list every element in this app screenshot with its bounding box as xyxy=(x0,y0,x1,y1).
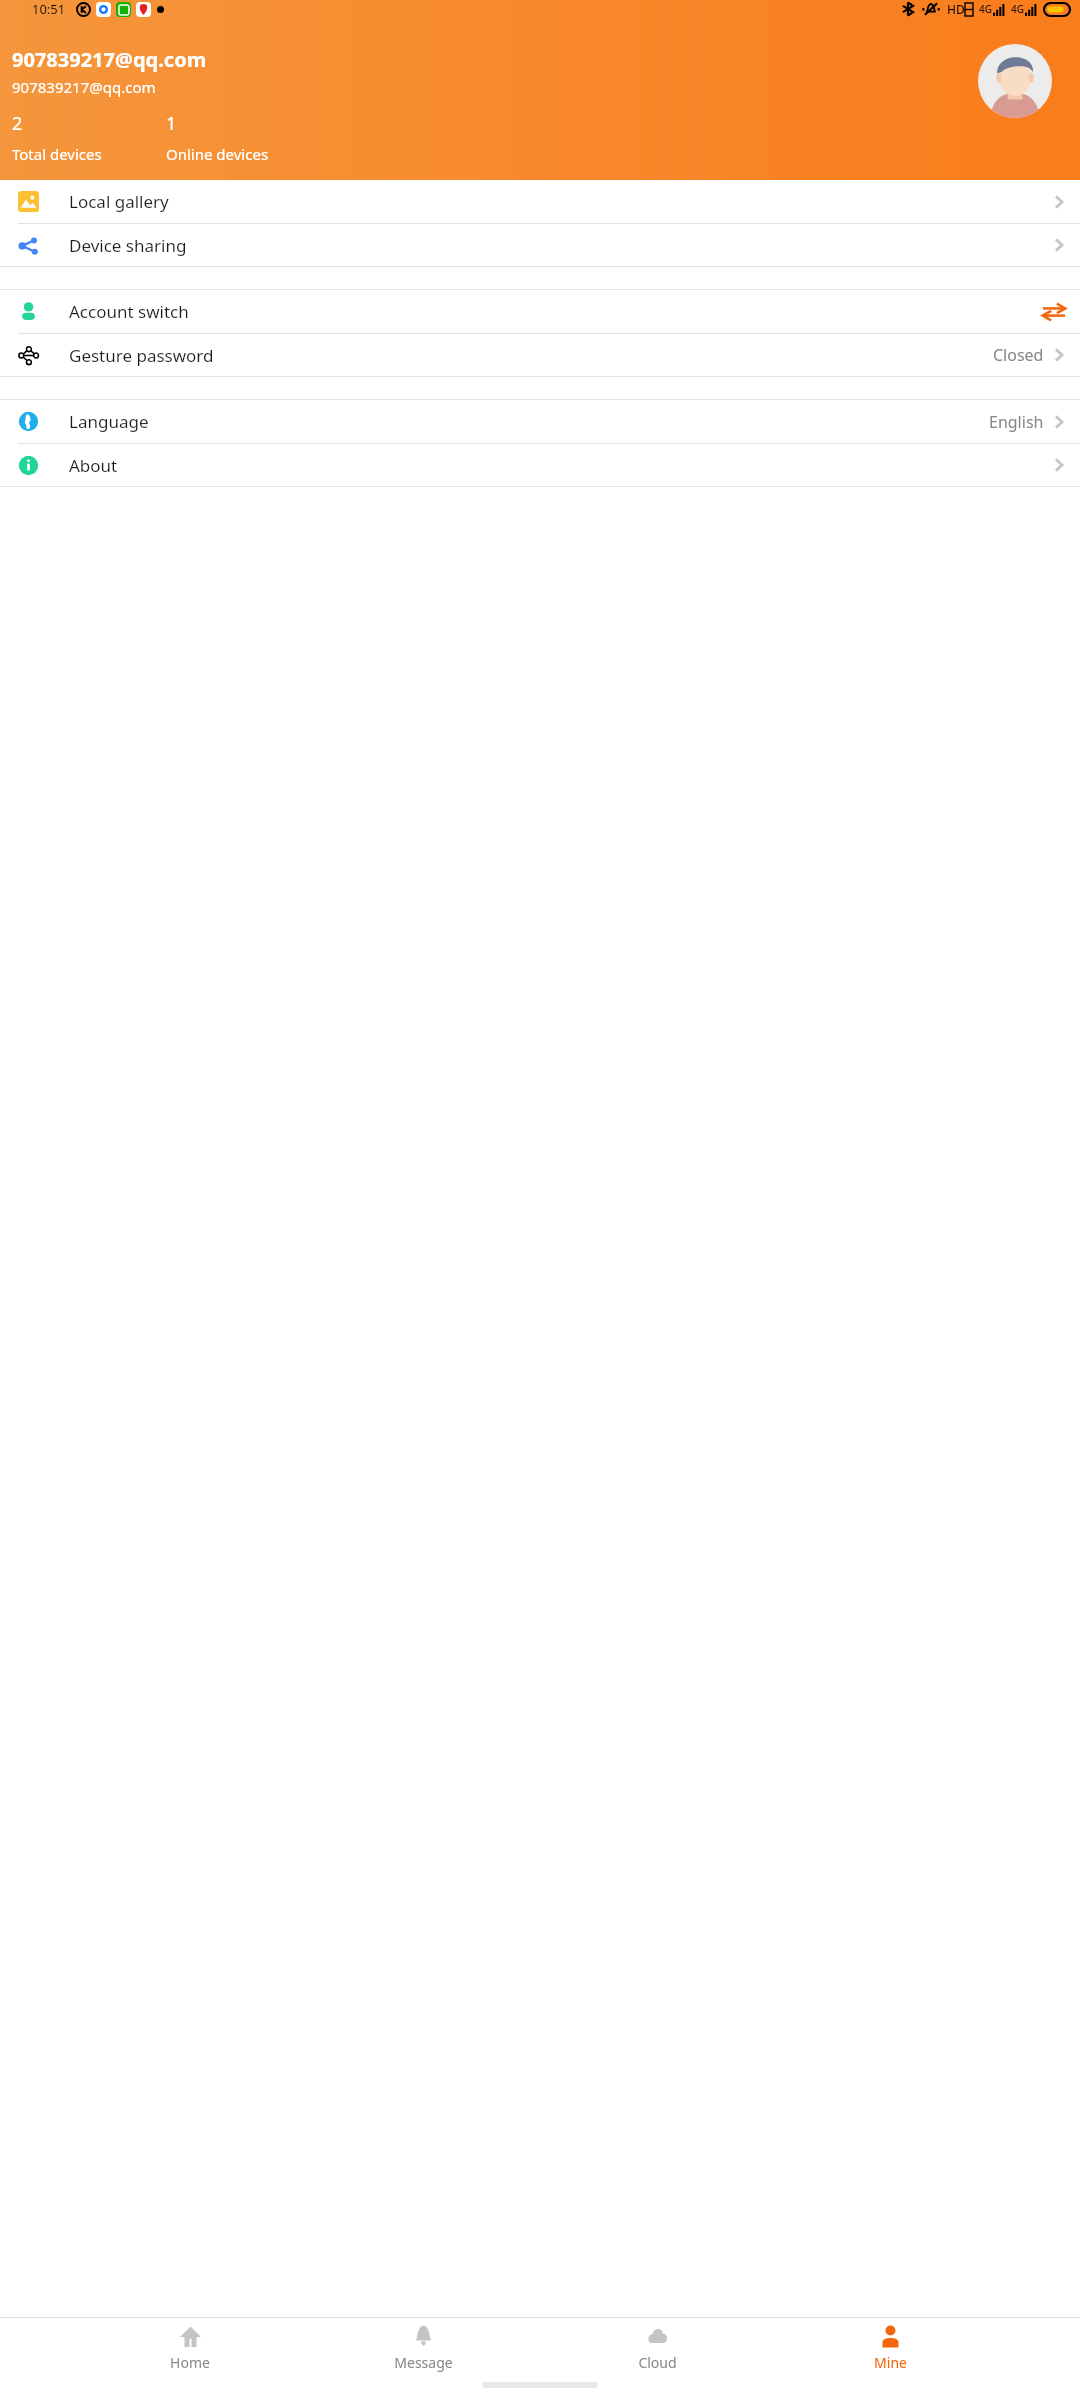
staticText: Mine xyxy=(874,2353,907,2372)
staticText: 907839217@qq.com xyxy=(12,46,207,73)
staticText: HD xyxy=(947,1,965,17)
staticText: Gesture password xyxy=(69,344,214,367)
staticText: Online devices xyxy=(166,144,269,164)
button[interactable]: Profile avatar xyxy=(978,44,1052,118)
staticText: Total devices xyxy=(12,144,102,164)
staticText: Language xyxy=(69,410,149,433)
button[interactable]: Mine xyxy=(846,2320,934,2376)
staticText: 4G xyxy=(1011,2,1024,16)
button[interactable]: Language xyxy=(0,400,1080,443)
staticText: About xyxy=(69,454,118,477)
staticText: Message xyxy=(394,2353,453,2372)
button[interactable]: About xyxy=(0,444,1080,486)
button[interactable]: Device sharing xyxy=(0,224,1080,266)
button[interactable]: Account switch xyxy=(0,290,1080,333)
button[interactable]: Local gallery xyxy=(0,180,1080,223)
button[interactable]: Gesture password xyxy=(0,334,1080,376)
staticText: Account switch xyxy=(69,300,189,323)
button[interactable]: Message xyxy=(379,2320,467,2376)
staticText: 907839217@qq.com xyxy=(12,77,156,97)
staticText: Closed xyxy=(993,344,1044,366)
staticText: Device sharing xyxy=(69,234,187,257)
staticText: Local gallery xyxy=(69,190,169,213)
staticText: 1 xyxy=(166,111,177,136)
staticText: 4G xyxy=(979,2,992,16)
staticText: 10:51 xyxy=(32,0,66,18)
staticText: English xyxy=(989,411,1044,433)
button[interactable]: Cloud xyxy=(613,2320,701,2376)
button[interactable]: Home xyxy=(146,2320,234,2376)
staticText: Home xyxy=(170,2353,210,2372)
staticText: Cloud xyxy=(638,2353,677,2372)
staticText: 2 xyxy=(12,111,23,136)
